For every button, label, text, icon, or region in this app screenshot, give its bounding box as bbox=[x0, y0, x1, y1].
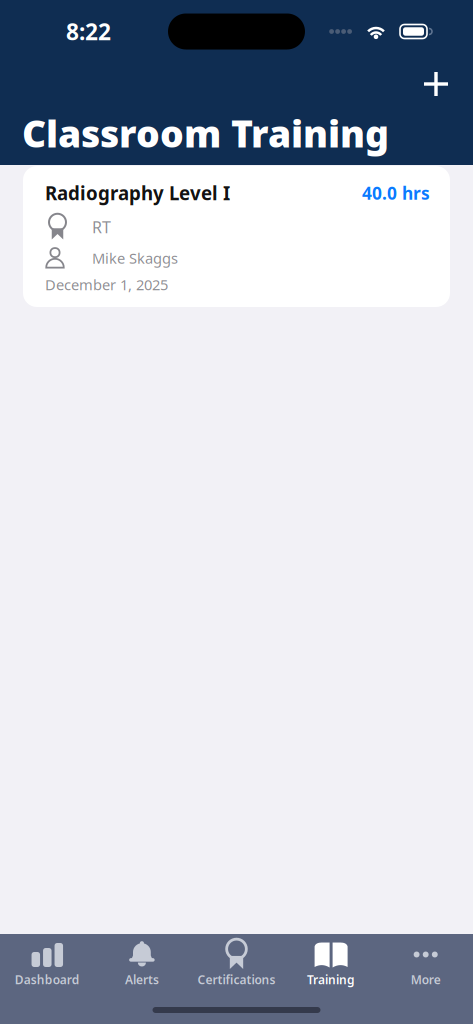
staticText: 40.0 hrs bbox=[362, 181, 430, 204]
staticText: December 1, 2025 bbox=[45, 275, 168, 294]
button[interactable]: Training bbox=[284, 940, 378, 990]
staticText: Certifications bbox=[197, 971, 275, 987]
staticText: Mike Skaggs bbox=[92, 248, 178, 268]
staticText: RT bbox=[92, 216, 111, 238]
staticText: 8:22 bbox=[66, 16, 111, 46]
button[interactable]: Alerts bbox=[95, 940, 189, 990]
staticText: Classroom Training bbox=[22, 108, 389, 158]
button[interactable]: Dashboard bbox=[0, 940, 95, 990]
staticText: Radiography Level I bbox=[45, 181, 230, 205]
staticText: More bbox=[411, 971, 441, 987]
staticText: Dashboard bbox=[15, 971, 80, 987]
staticText: Training bbox=[307, 971, 355, 987]
button[interactable]: Radiography Level I bbox=[23, 166, 450, 307]
button[interactable]: Add bbox=[419, 67, 453, 101]
button[interactable]: More bbox=[378, 940, 473, 990]
button[interactable]: Certifications bbox=[189, 940, 284, 990]
staticText: Alerts bbox=[125, 971, 159, 987]
